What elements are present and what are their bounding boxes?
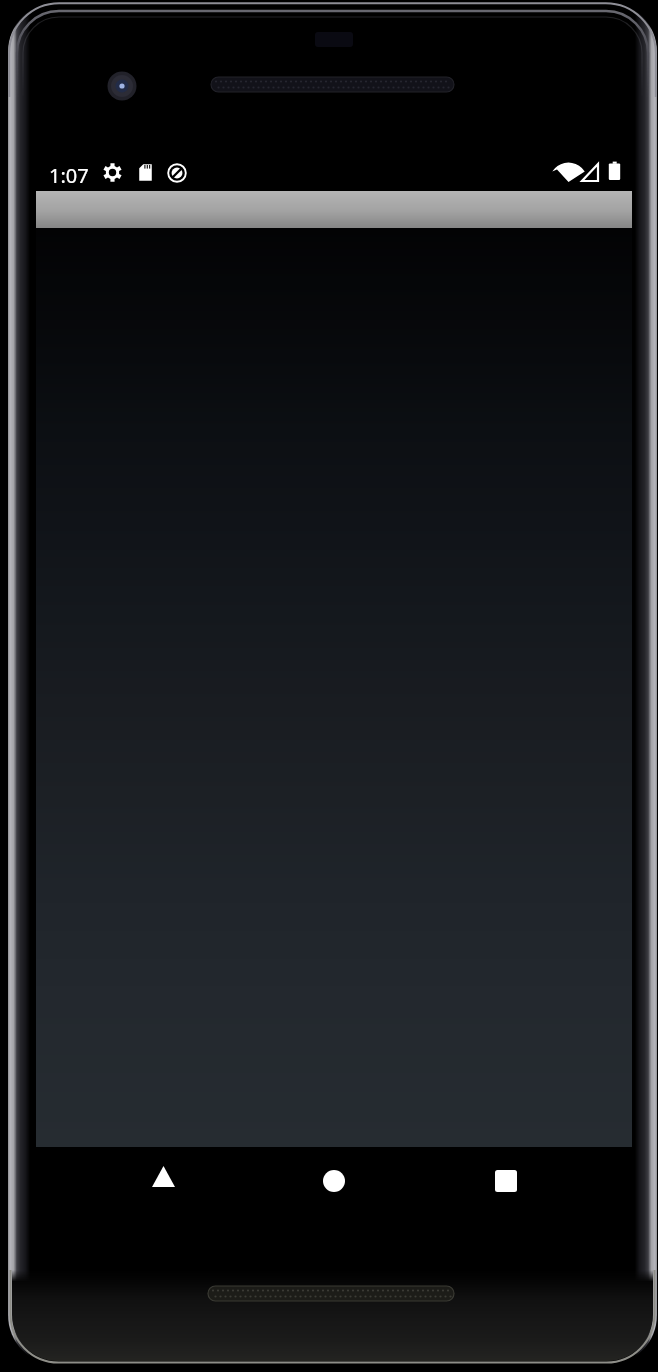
button[interactable]: Back bbox=[128, 1148, 198, 1204]
button[interactable] bbox=[36, 191, 632, 228]
button[interactable]: Home bbox=[299, 1153, 369, 1209]
button[interactable]: Recents bbox=[471, 1153, 541, 1209]
staticText: 1:07 bbox=[49, 162, 89, 189]
